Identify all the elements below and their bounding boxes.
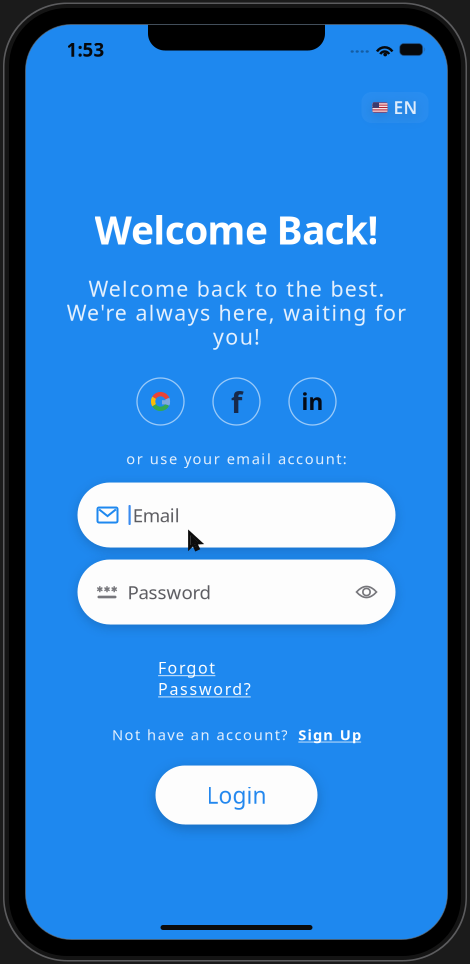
- button[interactable]: Sign Up: [298, 725, 361, 744]
- staticText: Login: [206, 780, 266, 810]
- staticText: Sign Up: [298, 725, 361, 744]
- staticText: Forgot Password?: [158, 657, 315, 678]
- button[interactable]: Login: [155, 765, 317, 824]
- staticText: Welcome back to the best.: [88, 274, 385, 303]
- staticText: EN: [393, 96, 417, 119]
- button[interactable]: EN: [361, 92, 428, 123]
- staticText: f: [231, 382, 242, 421]
- staticText: 1:53: [66, 37, 104, 62]
- button[interactable]: Sign in with LinkedIn: [288, 377, 337, 426]
- staticText: Password: [127, 580, 210, 604]
- button[interactable]: Password: [77, 559, 395, 624]
- staticText: Not have an account?: [112, 725, 287, 744]
- button[interactable]: Sign in with Google: [136, 377, 185, 426]
- staticText: in: [301, 386, 323, 416]
- button[interactable]: Forgot Password?: [158, 654, 315, 680]
- button[interactable]: Sign in with Facebook: [212, 377, 261, 426]
- staticText: Email: [133, 503, 180, 527]
- staticText: We're always here, waiting for: [67, 298, 406, 327]
- staticText: you!: [213, 322, 260, 351]
- staticText: or use your email account:: [126, 449, 347, 468]
- staticText: Welcome Back!: [95, 204, 378, 255]
- button[interactable]: Email: [77, 482, 395, 547]
